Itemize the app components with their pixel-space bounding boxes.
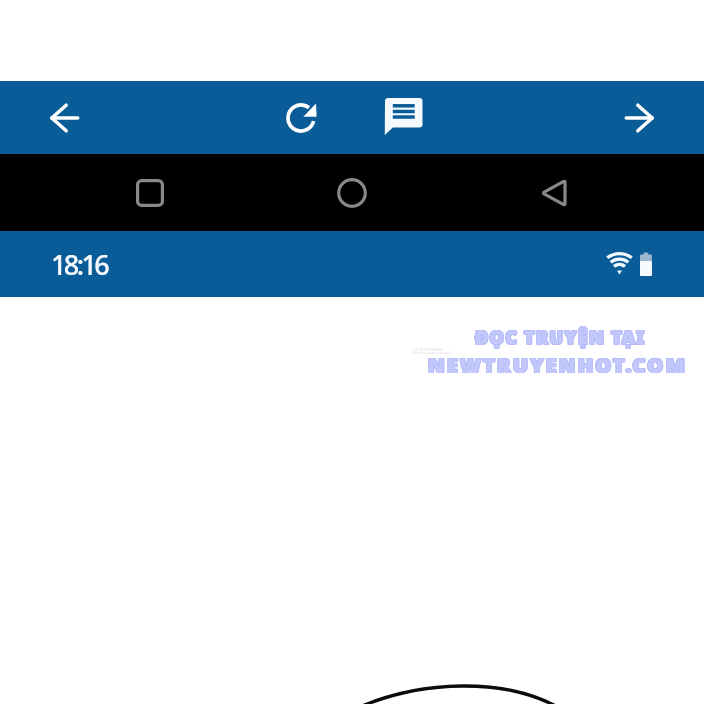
staticText: NEWTRUYENHOT.COM	[428, 351, 687, 378]
staticText: ĐỌC TRUYỆN TẠI	[474, 325, 645, 350]
staticText: 18:16	[51, 246, 108, 283]
staticText: ĐỌC TRUYỆN TẠI	[474, 326, 645, 351]
button[interactable]: Comments	[366, 88, 426, 148]
staticText: NEWTRUYENHOT.COM	[428, 352, 687, 379]
staticText: NEWTRUYENHOT.COM	[428, 352, 687, 379]
button[interactable]: Refresh	[271, 88, 331, 148]
staticText: NEWTRUYENHOT.COM	[429, 352, 688, 379]
staticText: ĐỌC TRUYỆN TẠI	[475, 324, 646, 349]
staticText: ĐỌC TRUYỆN TẠI	[476, 325, 647, 350]
staticText: NEWTRUYENHOT.COM	[428, 352, 687, 379]
staticText: ĐỌC TRUYỆN TẠI	[475, 325, 646, 350]
button[interactable]: Forward	[610, 88, 670, 148]
staticText: NEWTRUYENHOT.COM	[429, 352, 688, 379]
button[interactable]: Recents	[120, 163, 180, 223]
staticText: ĐỌC TRUYỆN TẠI	[476, 324, 647, 349]
staticText: ĐỌC TRUYỆN TẠI	[475, 324, 646, 349]
staticText: NEWTRUYENHOT.COM	[428, 352, 687, 379]
staticText: ĐỌC TRUYỆN TẠI	[476, 326, 647, 351]
staticText: NEWTRUYENHOT.COM	[429, 351, 688, 378]
staticText: ĐỌC TRUYỆN TẠI	[475, 326, 646, 351]
staticText: ĐỌC TRUYỆN TẠI	[475, 325, 646, 350]
staticText: NEWTRUYENHOT.COM	[428, 351, 687, 378]
staticText: NEWTRUYENHOT.COM	[428, 352, 687, 379]
button[interactable]: Back	[524, 163, 584, 223]
staticText: BLOG TRUYEN HAY	[415, 348, 443, 352]
staticText: NEWTRUYENHOT.COM	[428, 352, 687, 379]
staticText: ĐỌC TRUYỆN TẠI	[475, 326, 646, 351]
staticText: ĐỌC TRUYỆN TẠI	[475, 325, 646, 350]
staticText: NEWTRUYENHOT.COM	[427, 351, 686, 378]
button[interactable]: Back	[36, 88, 96, 148]
staticText: https://newtruyenhot.com/	[411, 351, 451, 355]
button[interactable]: Home	[322, 163, 382, 223]
staticText: ĐỌC TRUYỆN TẠI	[474, 324, 645, 349]
staticText: NEWTRUYENHOT.COM	[428, 352, 687, 379]
staticText: ĐỌC TRUYỆN TẠI	[475, 324, 646, 349]
staticText: ĐỌC TRUYỆN TẠI	[475, 326, 646, 351]
staticText: ĐỌC TRUYỆN TẠI	[475, 325, 646, 350]
staticText: NEWTRUYENHOT.COM	[427, 352, 686, 379]
staticText: NEWTRUYENHOT.COM	[427, 352, 686, 379]
staticText: NEWTRUYENHOT.COM	[428, 351, 687, 378]
